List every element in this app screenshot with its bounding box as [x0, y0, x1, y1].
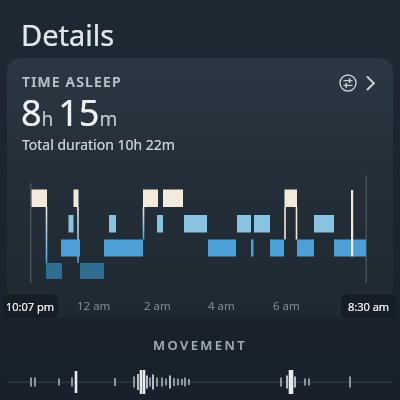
staticText: 8:30 am: [348, 299, 390, 314]
button[interactable]: 10:07 pm: [3, 294, 58, 318]
button[interactable]: [7, 58, 393, 317]
staticText: 6 am: [273, 298, 300, 314]
button[interactable]: [360, 72, 382, 94]
staticText: 10:07 pm: [6, 299, 55, 314]
staticText: 8h 15m: [21, 88, 118, 137]
staticText: 4 am: [208, 298, 235, 314]
staticText: 2 am: [144, 298, 171, 314]
staticText: 12 am: [77, 298, 111, 314]
staticText: TIME ASLEEP: [22, 72, 122, 91]
staticText: Details: [21, 15, 115, 54]
button[interactable]: 8:30 am: [341, 294, 397, 318]
staticText: MOVEMENT: [153, 336, 247, 354]
staticText: Total duration 10h 22m: [22, 135, 175, 154]
button[interactable]: [337, 72, 359, 94]
